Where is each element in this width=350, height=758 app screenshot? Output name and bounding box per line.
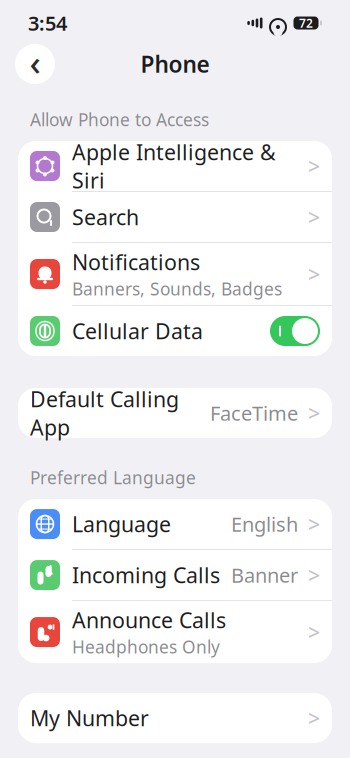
staticText: Banner (231, 562, 298, 588)
staticText: > (308, 704, 320, 732)
button[interactable]: Incoming Calls (18, 550, 332, 600)
button[interactable]: Announce Calls (18, 601, 332, 663)
staticText: > (308, 618, 320, 646)
staticText: ‹ (29, 39, 40, 85)
staticText: Cellular Data (72, 317, 203, 345)
button[interactable]: Notifications (18, 243, 332, 305)
staticText: > (308, 203, 320, 231)
staticText: > (308, 510, 320, 538)
staticText: Headphones Only (72, 635, 220, 658)
staticText: FaceTime (210, 400, 298, 426)
staticText: Allow Phone to Access (30, 108, 209, 131)
staticText: > (308, 260, 320, 288)
staticText: > (308, 399, 320, 427)
button[interactable]: Back (15, 44, 55, 84)
button[interactable]: Cellular Data (18, 306, 332, 356)
button[interactable]: Apple Intelligence & Siri (18, 141, 332, 191)
staticText: Incoming Calls (72, 561, 220, 589)
staticText: My Number (30, 704, 149, 732)
button[interactable]: My Number (18, 693, 332, 743)
button[interactable]: Default Calling App (18, 388, 332, 438)
staticText: Apple Intelligence & Siri (72, 138, 276, 194)
staticText: Default Calling App (30, 385, 179, 441)
button[interactable]: Language (18, 499, 332, 549)
staticText: Search (72, 203, 139, 231)
staticText: > (308, 561, 320, 589)
staticText: Banners, Sounds, Badges (72, 277, 282, 300)
staticText: Language (72, 510, 171, 538)
staticText: Notifications (72, 248, 200, 276)
staticText: Phone (140, 49, 209, 79)
staticText: > (308, 152, 320, 180)
staticText: 72 (299, 15, 313, 31)
staticText: Announce Calls (72, 606, 226, 634)
button[interactable]: Search (18, 192, 332, 242)
staticText: Preferred Language (30, 466, 196, 489)
staticText: 3:54 (28, 10, 67, 36)
staticText: English (231, 511, 298, 537)
